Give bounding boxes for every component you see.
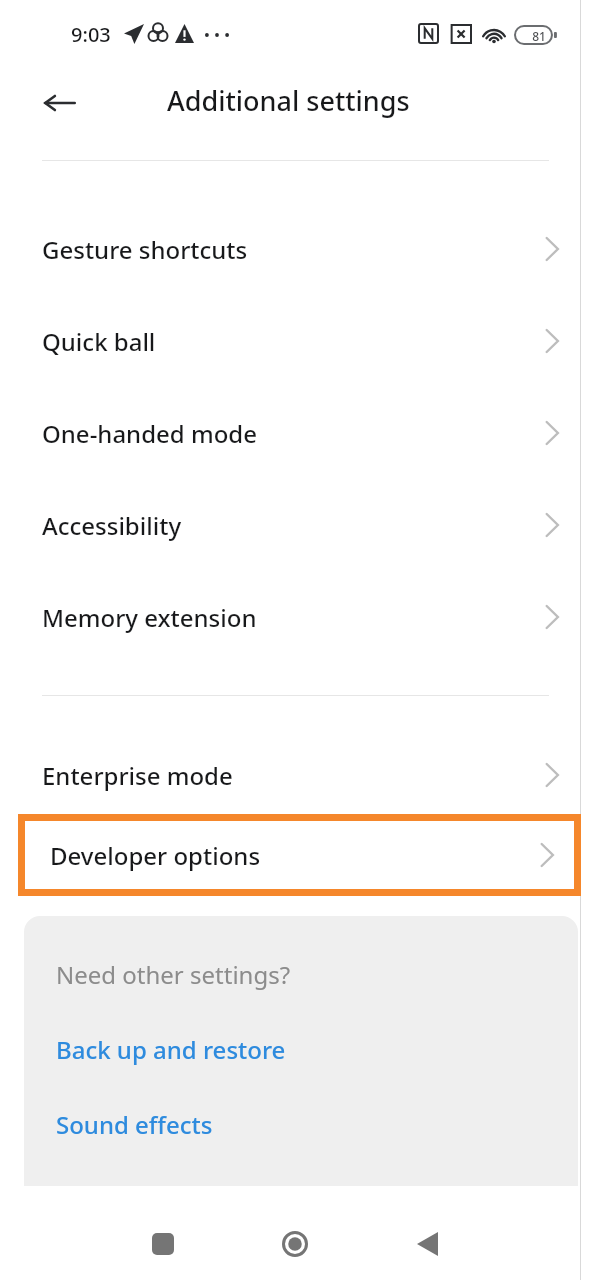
button[interactable]: Quick ball	[0, 295, 591, 387]
button[interactable]: Home	[259, 1208, 331, 1280]
button[interactable]: One-handed mode	[0, 387, 591, 479]
staticText: Memory extension	[42, 601, 257, 634]
staticText: Enterprise mode	[42, 759, 233, 792]
button[interactable]: Back up and restore	[56, 1033, 286, 1066]
button[interactable]: Accessibility	[0, 479, 591, 571]
staticText: Accessibility	[42, 509, 182, 542]
staticText: 81	[524, 28, 554, 44]
button[interactable]: Enterprise mode	[0, 736, 591, 814]
staticText: Gesture shortcuts	[42, 233, 248, 266]
button[interactable]: Back	[391, 1208, 463, 1280]
staticText: One-handed mode	[42, 417, 257, 450]
button[interactable]: Sound effects	[56, 1108, 213, 1141]
button[interactable]: Recents	[127, 1208, 199, 1280]
staticText: Additional settings	[167, 82, 410, 119]
staticText: Developer options	[50, 839, 261, 872]
staticText: Quick ball	[42, 325, 156, 358]
button[interactable]: Memory extension	[0, 571, 591, 663]
button[interactable]: Gesture shortcuts	[0, 203, 591, 295]
staticText: Need other settings?	[56, 958, 291, 991]
button[interactable]: Developer options	[25, 821, 574, 889]
staticText: 9:03	[71, 21, 111, 48]
button[interactable]: Back	[44, 87, 76, 119]
